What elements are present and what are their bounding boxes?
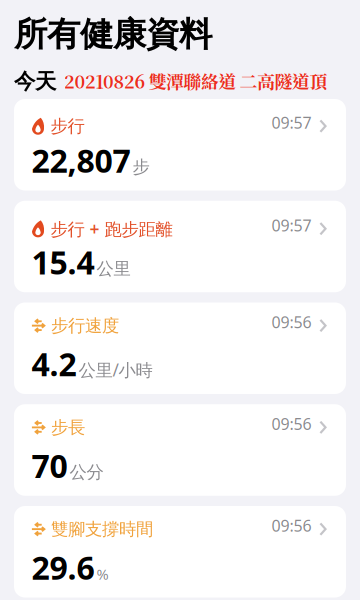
staticText: 今天 xyxy=(14,68,56,94)
staticText: 公分 xyxy=(69,461,103,483)
button[interactable]: 雙腳支撐時間 xyxy=(14,506,346,597)
button[interactable]: 步行 + 跑步距離 xyxy=(14,201,346,292)
staticText: 4.2 xyxy=(31,342,76,385)
staticText: 步 xyxy=(132,156,149,178)
staticText: 09:57 xyxy=(271,215,311,236)
staticText: 步行速度 xyxy=(51,315,119,336)
staticText: 步長 xyxy=(51,417,85,438)
staticText: 09:56 xyxy=(271,413,311,434)
staticText: 09:57 xyxy=(271,112,311,133)
staticText: 20210826 雙潭聯絡道 二高隧道頂 xyxy=(64,68,327,94)
staticText: 29.6 xyxy=(31,546,94,588)
staticText: 70 xyxy=(31,444,67,487)
staticText: % xyxy=(96,564,108,584)
button[interactable]: 步行速度 xyxy=(14,302,346,394)
staticText: 公里/小時 xyxy=(78,358,152,381)
staticText: 雙腳支撐時間 xyxy=(51,518,153,540)
staticText: 09:56 xyxy=(271,515,311,536)
staticText: 09:56 xyxy=(271,311,311,333)
staticText: 步行 + 跑步距離 xyxy=(50,217,172,240)
staticText: 步行 xyxy=(50,115,84,137)
staticText: 15.4 xyxy=(31,241,94,283)
staticText: 22,807 xyxy=(31,139,130,181)
button[interactable]: 步行 xyxy=(14,99,346,190)
staticText: 公里 xyxy=(96,258,130,279)
button[interactable]: 步長 xyxy=(14,404,346,496)
staticText: 所有健康資料 xyxy=(14,14,212,55)
